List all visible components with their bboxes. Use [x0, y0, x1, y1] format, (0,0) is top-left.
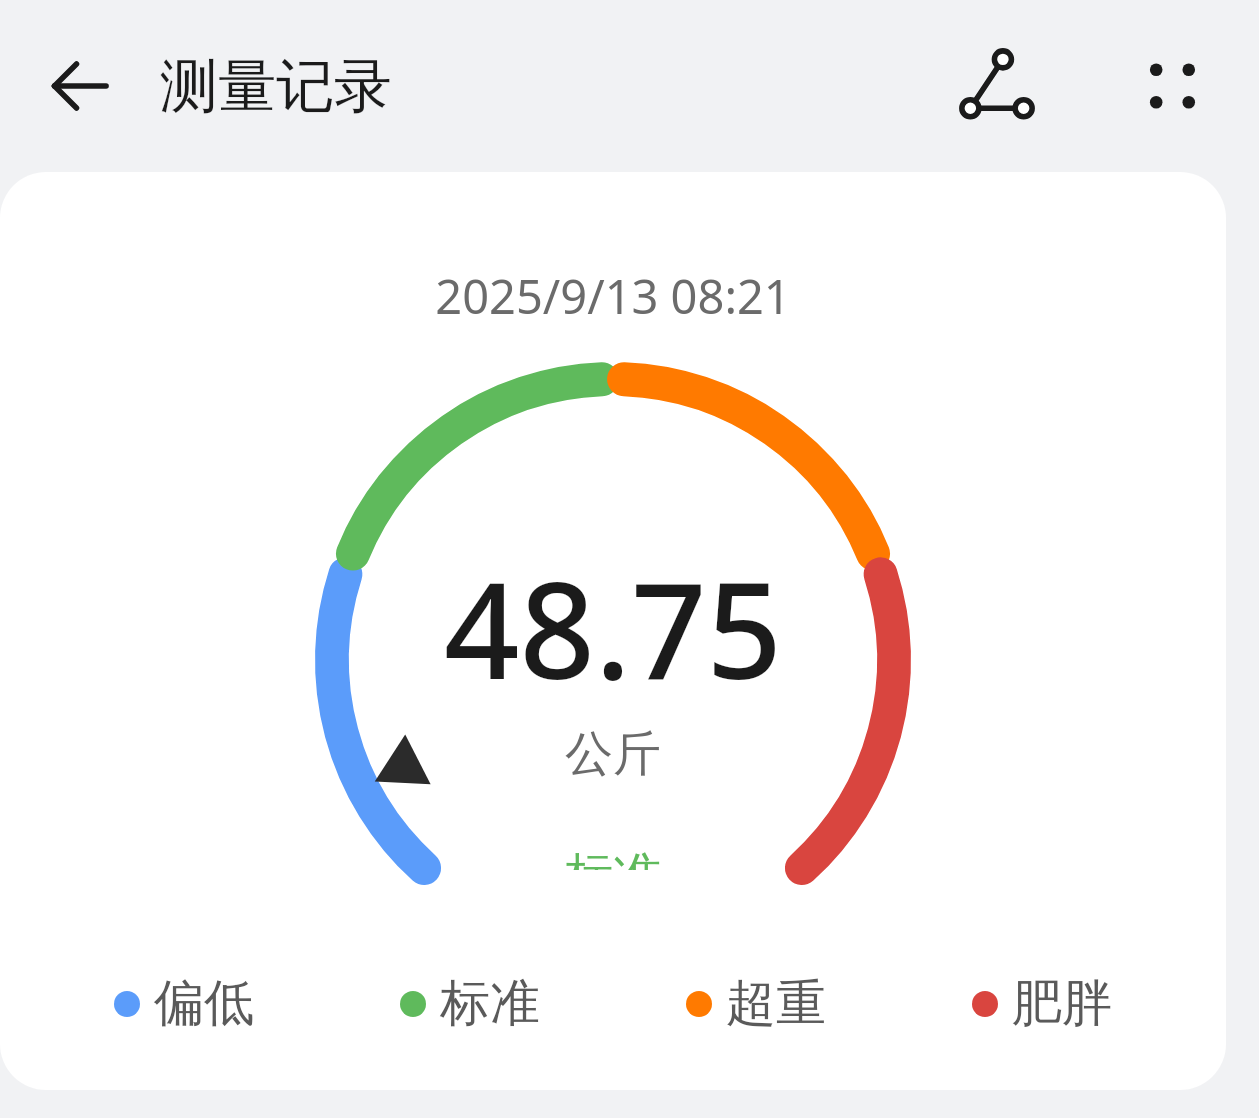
button[interactable]: 超重: [684, 968, 828, 1039]
staticText: 48.75: [444, 538, 782, 718]
staticText: 标准: [440, 972, 540, 1035]
staticText: 肥胖: [1012, 972, 1112, 1035]
button[interactable]: More options: [1119, 34, 1223, 138]
button[interactable]: 标准: [398, 968, 542, 1039]
button[interactable]: Share: [945, 34, 1049, 138]
staticText: 测量记录: [160, 50, 392, 123]
staticText: 偏低: [154, 972, 254, 1035]
button[interactable]: Back: [30, 36, 130, 136]
staticText: 超重: [726, 972, 826, 1035]
staticText: 2025/9/13 08:21: [435, 264, 791, 328]
staticText: 公斤: [565, 724, 661, 784]
button[interactable]: 肥胖: [970, 968, 1114, 1039]
staticText: 标准: [565, 846, 661, 870]
button[interactable]: 偏低: [112, 968, 256, 1039]
